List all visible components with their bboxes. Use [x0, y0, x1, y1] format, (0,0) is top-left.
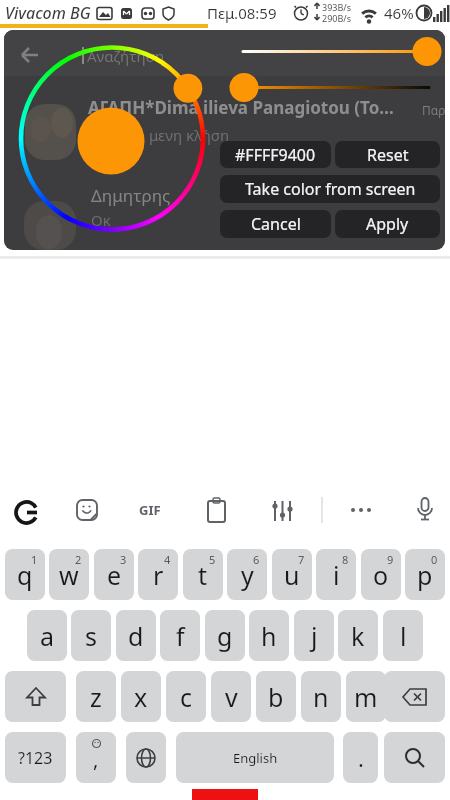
button[interactable]: . [343, 732, 378, 783]
button[interactable] [384, 671, 445, 722]
button[interactable]: q [5, 549, 45, 600]
button[interactable]: i [316, 549, 356, 600]
button[interactable] [126, 732, 166, 783]
button[interactable]: ?123 [5, 732, 66, 783]
staticText: ΑΓΑΠΗ*Dima ilieva Panagiotou (Το… [88, 96, 394, 119]
button[interactable]: English [176, 732, 334, 783]
staticText: 5 [209, 552, 216, 567]
staticText: p [417, 558, 433, 592]
staticText: 46% [384, 3, 414, 23]
button[interactable] [5, 671, 66, 722]
button[interactable]: o [361, 549, 401, 600]
button[interactable]: a [27, 610, 67, 661]
staticText: Πεμ.08:59 [207, 3, 277, 23]
staticText: Οκ [91, 210, 111, 230]
staticText: 8 [342, 552, 349, 567]
button[interactable]: r [138, 549, 178, 600]
staticText: Cancel [251, 213, 301, 235]
button[interactable]: , [76, 732, 116, 783]
button[interactable] [384, 732, 445, 783]
staticText: 7 [298, 552, 305, 567]
button[interactable]: l [383, 610, 423, 661]
staticText: b [268, 680, 284, 714]
button[interactable]: b [256, 671, 296, 722]
staticText: r [153, 558, 164, 592]
staticText: w [59, 558, 79, 592]
staticText: q [17, 558, 33, 592]
staticText: 1 [31, 552, 38, 567]
button[interactable]: p [405, 549, 445, 600]
staticText: μενη κλήση [149, 125, 230, 145]
staticText: v [225, 680, 238, 714]
staticText: l [400, 619, 407, 653]
staticText: Reset [367, 144, 409, 166]
button[interactable] [266, 495, 300, 525]
staticText: z [90, 680, 102, 714]
button[interactable] [10, 494, 42, 526]
button[interactable]: s [71, 610, 111, 661]
staticText: m [354, 680, 378, 714]
staticText: o [373, 558, 389, 592]
staticText: c [180, 680, 193, 714]
staticText: j [311, 619, 318, 653]
staticText: f [176, 619, 185, 653]
staticText: i [333, 558, 340, 592]
staticText: 393B/s [322, 1, 351, 13]
button[interactable]: f [160, 610, 200, 661]
staticText: English [233, 749, 278, 767]
button[interactable]: k [338, 610, 378, 661]
staticText: n [313, 680, 329, 714]
button[interactable]: Apply [335, 210, 440, 238]
button[interactable]: w [49, 549, 89, 600]
button[interactable]: GIF [132, 495, 168, 525]
button[interactable]: d [116, 610, 156, 661]
button[interactable]: c [166, 671, 206, 722]
staticText: y [241, 558, 254, 592]
staticText: Αναζήτηση [87, 46, 165, 66]
button[interactable]: t [183, 549, 223, 600]
staticText: Vivacom BG [5, 2, 91, 24]
staticText: 9 [387, 552, 394, 567]
staticText: e [107, 558, 122, 592]
button[interactable]: v [211, 671, 251, 722]
staticText: s [85, 619, 97, 653]
button[interactable]: Reset [335, 141, 440, 168]
staticText: a [40, 619, 55, 653]
button[interactable]: m [346, 671, 386, 722]
button[interactable] [70, 495, 104, 525]
button[interactable]: x [121, 671, 161, 722]
staticText: Apply [366, 213, 409, 235]
staticText: . [358, 743, 364, 773]
staticText: g [217, 619, 233, 653]
staticText: h [261, 619, 277, 653]
staticText: 2 [75, 552, 82, 567]
staticText: t [198, 558, 208, 592]
button[interactable]: h [249, 610, 289, 661]
button[interactable]: n [301, 671, 341, 722]
button[interactable]: u [272, 549, 312, 600]
staticText: Δημητρης [91, 184, 171, 207]
staticText: GIF [139, 501, 161, 519]
button[interactable] [344, 495, 378, 525]
button[interactable]: Cancel [220, 210, 331, 238]
staticText: 0 [431, 552, 438, 567]
button[interactable]: y [227, 549, 267, 600]
button[interactable]: j [294, 610, 334, 661]
staticText: d [128, 619, 144, 653]
button[interactable]: e [94, 549, 134, 600]
staticText: ?123 [18, 747, 53, 769]
staticText: , [93, 746, 99, 773]
button[interactable]: g [205, 610, 245, 661]
button[interactable]: z [76, 671, 116, 722]
button[interactable]: Take color from screen [220, 175, 440, 203]
staticText: Παρ [422, 102, 445, 118]
button[interactable] [408, 493, 442, 527]
button[interactable] [200, 495, 234, 525]
staticText: x [134, 680, 148, 714]
staticText: k [351, 619, 365, 653]
button[interactable]: #FFFF9400 [220, 141, 331, 168]
staticText: #FFFF9400 [235, 144, 316, 166]
staticText: 3 [120, 552, 127, 567]
staticText: 290B/s [322, 12, 351, 24]
staticText: 4 [164, 552, 171, 567]
